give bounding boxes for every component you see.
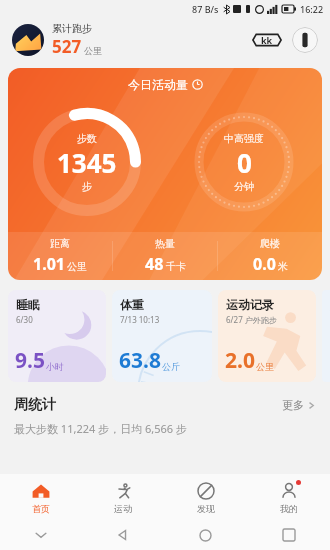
staticText: 9.5 <box>15 346 45 375</box>
staticText: 1345 <box>57 145 117 180</box>
staticText: 距离 <box>50 237 70 250</box>
staticText: 步数 <box>77 132 97 145</box>
staticText: 公斤 <box>162 361 180 372</box>
button[interactable]: 周统计 <box>14 396 316 414</box>
button[interactable]: 运动记录 <box>218 290 316 382</box>
staticText: 累计跑步 <box>52 22 92 35</box>
staticText: 公里 <box>67 260 87 273</box>
staticText: 6/27 户外跑步 <box>226 314 277 325</box>
staticText: 87 B/s <box>192 3 219 15</box>
button[interactable]: Home <box>164 520 247 550</box>
staticText: 米 <box>278 260 288 273</box>
staticText: 公里 <box>84 45 102 56</box>
staticText: 中高强度 <box>224 132 264 145</box>
button[interactable]: 运动 <box>82 474 164 520</box>
staticText: 爬楼 <box>260 237 280 250</box>
staticText: 16:22 <box>300 3 324 15</box>
staticText: 千卡 <box>166 260 186 273</box>
staticText: 2.0 <box>225 346 255 375</box>
staticText: 热量 <box>155 237 175 250</box>
staticText: 0 <box>237 145 252 180</box>
staticText: 步 <box>82 180 92 193</box>
button[interactable]: Back <box>82 520 164 550</box>
staticText: kk <box>261 34 273 46</box>
button[interactable]: Device <box>292 27 318 53</box>
staticText: 6/30 <box>16 314 33 325</box>
staticText: 48 <box>145 253 164 275</box>
staticText: 周统计 <box>14 396 56 414</box>
staticText: 分钟 <box>234 180 254 193</box>
button[interactable]: 体重 <box>112 290 212 382</box>
staticText: 运动记录 <box>226 297 274 312</box>
staticText: 首页 <box>32 503 50 514</box>
staticText: 体重 <box>120 297 144 312</box>
button[interactable]: 累计跑步 <box>52 22 102 58</box>
staticText: 睡眠 <box>16 297 40 312</box>
staticText: 最大步数 11,224 步，日均 6,566 步 <box>14 421 187 436</box>
button[interactable]: 发现 <box>164 474 247 520</box>
button[interactable]: 首页 <box>0 474 82 520</box>
staticText: 公里 <box>256 361 274 372</box>
staticText: 1.01 <box>33 253 65 275</box>
staticText: 527 <box>52 35 82 58</box>
staticText: 运动 <box>114 503 132 514</box>
staticText: 63.8 <box>119 346 161 375</box>
button[interactable]: KK badge <box>252 30 282 50</box>
staticText: 发现 <box>197 503 215 514</box>
button[interactable]: Recents <box>247 520 330 550</box>
button[interactable]: 我的 <box>247 474 330 520</box>
button[interactable]: Hide <box>0 520 82 550</box>
staticText: 7/13 10:13 <box>120 314 160 325</box>
staticText: 0.0 <box>253 253 276 275</box>
staticText: 更多 <box>282 398 304 412</box>
button[interactable]: Profile avatar <box>12 24 44 56</box>
staticText: 小时 <box>46 361 64 372</box>
button[interactable]: 今日活动量 <box>8 68 322 280</box>
staticText: 今日活动量 <box>128 77 188 92</box>
staticText: 我的 <box>280 503 298 514</box>
button[interactable]: 睡眠 <box>8 290 106 382</box>
